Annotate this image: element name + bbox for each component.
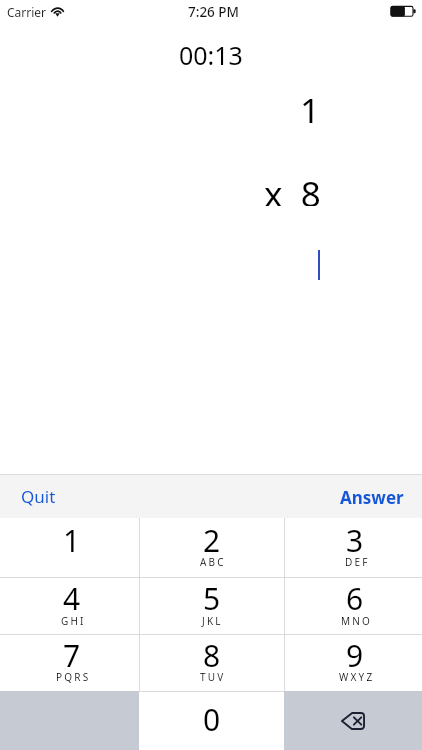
staticText: DEF xyxy=(345,555,370,569)
staticText: 8 xyxy=(203,635,221,676)
staticText: 2 xyxy=(203,520,221,561)
staticText: 1 xyxy=(63,520,81,561)
staticText: TUV xyxy=(200,670,226,684)
button[interactable]: 8 xyxy=(139,635,284,691)
staticText: Carrier xyxy=(7,4,47,20)
button[interactable]: 9 xyxy=(284,635,422,691)
button[interactable]: 3 xyxy=(284,518,422,578)
staticText: x 8 xyxy=(264,170,321,206)
button[interactable]: Answer xyxy=(320,476,422,519)
button[interactable]: 0 xyxy=(139,691,284,750)
button[interactable]: 4 xyxy=(0,578,139,635)
staticText: 00:13 xyxy=(179,38,243,68)
button[interactable]: Delete xyxy=(284,691,422,750)
button[interactable]: 2 xyxy=(139,518,284,578)
staticText: Answer xyxy=(340,486,404,509)
staticText: PQRS xyxy=(56,670,91,684)
button[interactable]: Quit xyxy=(0,475,75,518)
button[interactable]: 7 xyxy=(0,635,139,691)
staticText: Quit xyxy=(21,485,56,508)
staticText: ABC xyxy=(200,555,226,569)
staticText: WXYZ xyxy=(339,670,375,684)
staticText: 6 xyxy=(346,578,364,619)
staticText: 7 xyxy=(63,635,81,676)
staticText: 9 xyxy=(346,635,364,676)
staticText: 5 xyxy=(203,578,221,619)
staticText: 4 xyxy=(63,578,81,619)
button[interactable]: 6 xyxy=(284,578,422,635)
button[interactable]: 5 xyxy=(139,578,284,635)
staticText: JKL xyxy=(202,614,223,628)
staticText: 7:26 PM xyxy=(188,3,239,21)
staticText: GHI xyxy=(61,614,86,628)
staticText: 3 xyxy=(346,520,364,561)
button[interactable]: 1 xyxy=(0,518,139,578)
staticText: MNO xyxy=(341,614,373,628)
staticText: 0 xyxy=(203,699,221,740)
staticText: 1 xyxy=(300,87,321,123)
